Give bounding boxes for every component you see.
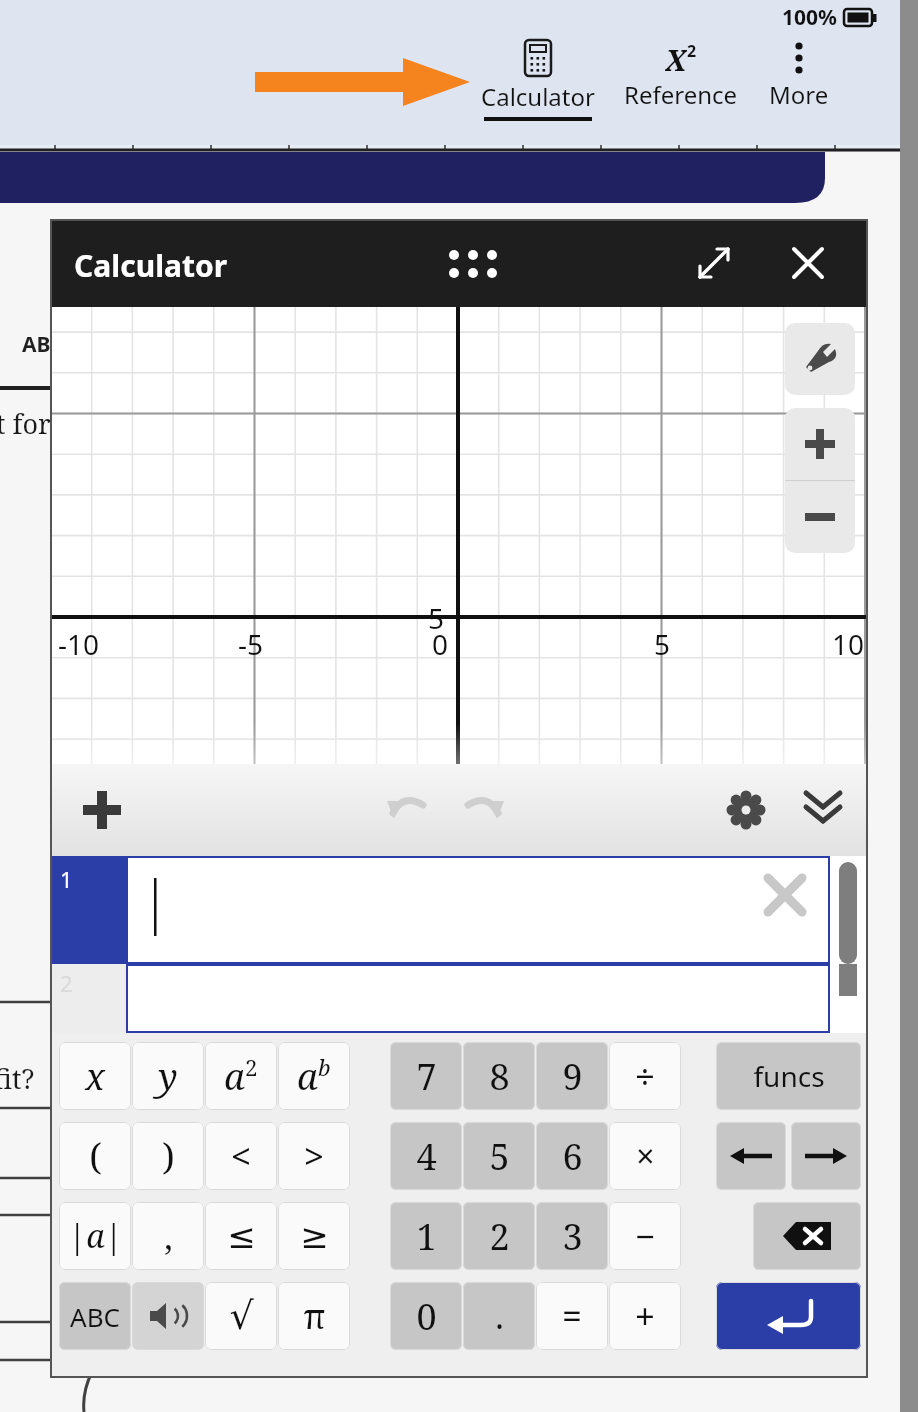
staticText: funcs bbox=[753, 1057, 825, 1095]
button[interactable]: 0 bbox=[390, 1282, 462, 1350]
button[interactable]: |a| bbox=[59, 1202, 131, 1270]
button[interactable]: Move bbox=[440, 239, 500, 287]
staticText: − bbox=[635, 1213, 655, 1259]
button[interactable]: √ bbox=[205, 1282, 277, 1350]
button[interactable]: Clear expression bbox=[126, 856, 830, 964]
button[interactable]: ABC bbox=[59, 1282, 131, 1350]
staticText: Calculator bbox=[74, 245, 228, 286]
button[interactable]: Expand bbox=[688, 237, 740, 289]
button[interactable]: More options bbox=[755, 40, 843, 111]
button[interactable]: Collapse bbox=[795, 782, 851, 838]
button[interactable]: − bbox=[609, 1202, 681, 1270]
staticText: 7 bbox=[416, 1052, 437, 1101]
button[interactable]: Redo bbox=[455, 782, 511, 838]
staticText: 1 bbox=[60, 864, 73, 894]
staticText: 5 bbox=[654, 625, 671, 663]
button[interactable]: Zoom in bbox=[785, 408, 855, 480]
button[interactable]: Enter bbox=[716, 1282, 861, 1350]
staticText: > bbox=[304, 1133, 324, 1179]
button[interactable]: Move right bbox=[791, 1122, 861, 1190]
staticText: 5 bbox=[489, 1132, 510, 1181]
staticText: t for bbox=[0, 405, 51, 442]
staticText: 100% bbox=[782, 3, 837, 32]
staticText: . bbox=[495, 1293, 504, 1339]
button[interactable]: × bbox=[609, 1122, 681, 1190]
button[interactable]: ≥ bbox=[278, 1202, 350, 1270]
staticText: √ bbox=[229, 1294, 254, 1338]
button[interactable]: 5 bbox=[463, 1122, 535, 1190]
button[interactable]: Reference bbox=[620, 40, 742, 111]
button[interactable]: Move left bbox=[716, 1122, 786, 1190]
button[interactable]: Expression 2 bbox=[50, 964, 126, 1033]
staticText: 1 bbox=[416, 1212, 437, 1261]
button[interactable]: 1 bbox=[390, 1202, 462, 1270]
staticText: 5 bbox=[428, 599, 456, 637]
button[interactable]: ÷ bbox=[609, 1042, 681, 1110]
button[interactable]: Undo bbox=[380, 782, 436, 838]
staticText: -10 bbox=[58, 625, 100, 663]
staticText: |a| bbox=[68, 1214, 123, 1258]
staticText: a bbox=[224, 1052, 245, 1101]
staticText: π bbox=[303, 1293, 326, 1339]
staticText: 9 bbox=[562, 1052, 583, 1101]
staticText: × bbox=[636, 1134, 655, 1178]
button[interactable]: π bbox=[278, 1282, 350, 1350]
staticText: 8 bbox=[489, 1052, 510, 1101]
button[interactable]: 9 bbox=[536, 1042, 608, 1110]
staticText: Reference bbox=[624, 78, 738, 111]
button[interactable]: . bbox=[463, 1282, 535, 1350]
staticText: 6 bbox=[562, 1132, 583, 1181]
button[interactable]: 2 bbox=[463, 1202, 535, 1270]
staticText: < bbox=[231, 1133, 251, 1179]
button[interactable]: 3 bbox=[536, 1202, 608, 1270]
staticText: ) bbox=[162, 1132, 175, 1181]
button[interactable]: Expression 1 bbox=[50, 856, 126, 964]
button[interactable]: ≤ bbox=[205, 1202, 277, 1270]
button[interactable]: y bbox=[132, 1042, 204, 1110]
staticText: ÷ bbox=[635, 1053, 655, 1099]
button[interactable]: + bbox=[609, 1282, 681, 1350]
staticText: ( bbox=[89, 1132, 102, 1181]
staticText: 0 bbox=[432, 625, 449, 663]
staticText: b bbox=[318, 1052, 331, 1082]
staticText: , bbox=[164, 1213, 173, 1259]
staticText: a bbox=[297, 1052, 318, 1101]
button[interactable]: 4 bbox=[390, 1122, 462, 1190]
button[interactable]: Backspace bbox=[753, 1202, 861, 1270]
button[interactable]: x bbox=[59, 1042, 131, 1110]
staticText: = bbox=[562, 1293, 582, 1339]
button[interactable]: Settings bbox=[718, 782, 774, 838]
staticText: ≥ bbox=[300, 1216, 329, 1256]
button[interactable]: Add expression bbox=[74, 782, 130, 838]
button[interactable]: 7 bbox=[390, 1042, 462, 1110]
staticText: 4 bbox=[416, 1132, 437, 1181]
button[interactable] bbox=[126, 964, 830, 1033]
button[interactable]: funcs bbox=[716, 1042, 861, 1110]
button[interactable]: < bbox=[205, 1122, 277, 1190]
staticText: 2 bbox=[489, 1212, 510, 1261]
staticText: 2 bbox=[245, 1052, 258, 1082]
staticText: Calculator bbox=[481, 80, 595, 113]
staticText: fit? bbox=[0, 1060, 35, 1097]
button[interactable]: , bbox=[132, 1202, 204, 1270]
button[interactable]: Read aloud bbox=[132, 1282, 204, 1350]
button[interactable]: = bbox=[536, 1282, 608, 1350]
button[interactable]: ab bbox=[278, 1042, 350, 1110]
button[interactable]: Close bbox=[782, 237, 834, 289]
staticText: 2 bbox=[687, 40, 697, 62]
button[interactable]: ( bbox=[59, 1122, 131, 1190]
button[interactable]: Zoom out bbox=[785, 481, 855, 553]
staticText: + bbox=[635, 1293, 655, 1339]
button[interactable]: 8 bbox=[463, 1042, 535, 1110]
button[interactable]: Calculator bbox=[480, 40, 595, 121]
button[interactable]: Graph settings bbox=[785, 323, 855, 395]
button[interactable]: a2 bbox=[205, 1042, 277, 1110]
button[interactable]: 6 bbox=[536, 1122, 608, 1190]
staticText: 0 bbox=[416, 1292, 437, 1341]
button[interactable]: > bbox=[278, 1122, 350, 1190]
button[interactable]: Clear expression bbox=[758, 868, 812, 922]
button[interactable]: ) bbox=[132, 1122, 204, 1190]
staticText: X bbox=[665, 40, 687, 78]
staticText: -5 bbox=[238, 625, 264, 663]
